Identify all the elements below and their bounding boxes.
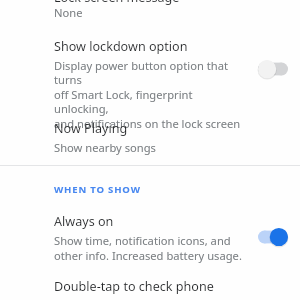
staticText: Double-tap to check phone [54,278,214,295]
button[interactable]: Lock screen message [0,0,300,26]
staticText: Show nearby songs [54,140,156,155]
staticText: WHEN TO SHOW [54,183,141,196]
staticText: Display power button option that turns [54,58,248,87]
staticText: None [54,5,83,20]
button[interactable]: Show lockdown option, off [256,58,290,80]
staticText: Now Playing [54,120,128,137]
staticText: Lock screen message [54,0,180,6]
button[interactable]: Show lockdown option [0,38,300,131]
staticText: Always on [54,213,114,230]
staticText: and notifications on the lock screen [54,116,241,131]
staticText: off Smart Lock, fingerprint unlocking, [54,87,248,116]
button[interactable]: Always on [0,213,300,263]
button[interactable]: Always on, on [256,226,290,248]
button[interactable]: Double-tap to check phone [0,278,300,295]
button[interactable]: Now Playing [0,120,300,155]
staticText: Show lockdown option [54,38,188,55]
staticText: Show time, notification icons, and [54,233,231,248]
staticText: other info. Increased battery usage. [54,248,242,263]
